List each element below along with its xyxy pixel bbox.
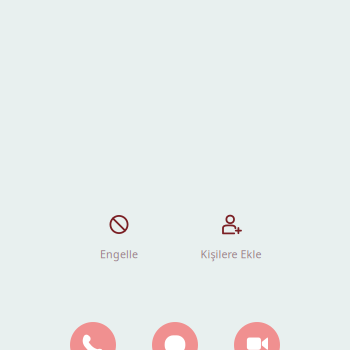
button[interactable]: Call (70, 322, 116, 350)
staticText: Kişilere Ekle (200, 247, 261, 261)
button[interactable]: Message (152, 322, 198, 350)
button[interactable]: Engelle (63, 215, 175, 261)
button[interactable]: Kişilere Ekle (175, 215, 287, 261)
button[interactable]: FaceTime video (234, 322, 280, 350)
staticText: Engelle (100, 247, 138, 261)
